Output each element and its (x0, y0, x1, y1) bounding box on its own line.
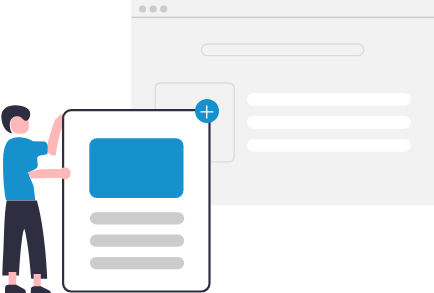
button[interactable]: Search (201, 44, 364, 56)
button[interactable]: Add (195, 99, 219, 123)
button[interactable]: Document card (62, 109, 211, 293)
